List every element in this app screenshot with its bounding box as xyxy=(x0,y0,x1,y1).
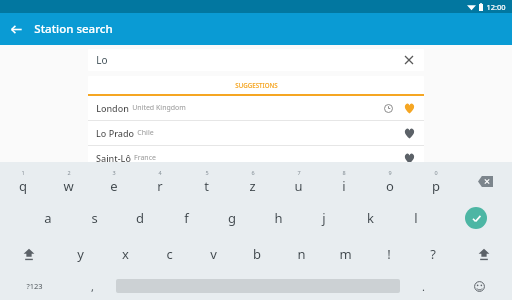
button[interactable]: v xyxy=(191,236,235,272)
button[interactable]: n xyxy=(279,236,323,272)
staticText: r xyxy=(157,177,163,195)
button[interactable]: x xyxy=(103,236,147,272)
staticText: Station search xyxy=(34,21,113,37)
staticText: i xyxy=(342,177,346,195)
button[interactable]: f xyxy=(163,200,209,236)
button[interactable]: ! xyxy=(367,236,411,272)
staticText: Lo Prado xyxy=(96,127,134,139)
staticText: 2 xyxy=(67,169,71,176)
button[interactable]: Favorite xyxy=(398,147,420,169)
button[interactable]: Shift xyxy=(455,236,512,272)
staticText: s xyxy=(91,209,98,227)
button[interactable]: l xyxy=(393,200,439,236)
staticText: SUGGESTIONS xyxy=(235,81,278,89)
button[interactable]: c xyxy=(147,236,191,272)
button[interactable]: 4 xyxy=(137,162,183,200)
staticText: ? xyxy=(430,245,436,263)
button[interactable]: 6 xyxy=(229,162,275,200)
staticText: j xyxy=(322,209,326,227)
staticText: l xyxy=(414,209,418,227)
staticText: 0 xyxy=(434,169,438,176)
staticText: k xyxy=(367,209,374,227)
button[interactable]: SUGGESTIONS xyxy=(88,76,424,96)
staticText: Saint-Lô xyxy=(96,152,131,164)
staticText: v xyxy=(210,245,217,263)
button[interactable]: , xyxy=(69,272,116,300)
button[interactable]: k xyxy=(347,200,393,236)
staticText: b xyxy=(253,245,261,263)
staticText: 9 xyxy=(388,169,392,176)
staticText: c xyxy=(166,245,173,263)
staticText: m xyxy=(339,245,352,263)
button[interactable]: 0 xyxy=(413,162,459,200)
button[interactable]: j xyxy=(301,200,347,236)
staticText: 12:00 xyxy=(486,2,506,12)
button[interactable]: 5 xyxy=(183,162,229,200)
staticText: q xyxy=(19,177,27,195)
staticText: o xyxy=(386,177,394,195)
staticText: p xyxy=(432,177,440,195)
button[interactable]: Clear xyxy=(398,49,420,71)
staticText: 6 xyxy=(251,169,255,176)
button[interactable]: Back xyxy=(0,13,32,45)
button[interactable]: a xyxy=(25,200,71,236)
button[interactable]: London xyxy=(88,96,424,120)
staticText: Lo xyxy=(96,53,108,67)
staticText: n xyxy=(297,245,306,263)
staticText: United Kingdom xyxy=(132,103,186,113)
button[interactable]: 8 xyxy=(321,162,367,200)
button[interactable]: Recent xyxy=(378,98,398,118)
button[interactable]: Emoji xyxy=(447,272,512,300)
staticText: London xyxy=(96,102,129,114)
staticText: x xyxy=(122,245,129,263)
button[interactable]: g xyxy=(209,200,255,236)
button[interactable]: Favorite xyxy=(398,97,420,119)
staticText: ?123 xyxy=(26,281,43,291)
staticText: . xyxy=(422,279,425,294)
staticText: d xyxy=(136,209,144,227)
button[interactable]: 9 xyxy=(367,162,413,200)
staticText: a xyxy=(44,209,52,227)
button[interactable]: ?123 xyxy=(0,272,69,300)
button[interactable]: m xyxy=(323,236,367,272)
button[interactable]: Backspace xyxy=(459,162,512,200)
staticText: 3 xyxy=(112,169,116,176)
staticText: ! xyxy=(387,245,391,263)
staticText: France xyxy=(134,153,156,163)
button[interactable]: 3 xyxy=(91,162,137,200)
button[interactable]: s xyxy=(71,200,117,236)
button[interactable]: 1 xyxy=(0,162,45,200)
button[interactable]: . xyxy=(400,272,447,300)
staticText: h xyxy=(274,209,283,227)
button[interactable]: Lo Prado xyxy=(88,121,424,145)
staticText: 5 xyxy=(205,169,209,176)
staticText: u xyxy=(294,177,303,195)
staticText: g xyxy=(228,209,236,227)
button[interactable]: Saint-Lô xyxy=(88,146,424,170)
staticText: Chile xyxy=(137,128,154,138)
staticText: t xyxy=(204,177,209,195)
staticText: z xyxy=(249,177,256,195)
button[interactable]: Enter xyxy=(439,200,512,236)
button[interactable]: 7 xyxy=(275,162,321,200)
staticText: 7 xyxy=(297,169,301,176)
button[interactable]: b xyxy=(235,236,279,272)
staticText: 4 xyxy=(158,169,162,176)
staticText: 1 xyxy=(21,169,25,176)
button[interactable]: Lo xyxy=(88,49,424,71)
staticText: f xyxy=(184,209,189,227)
button[interactable]: 2 xyxy=(45,162,91,200)
button[interactable]: Shift xyxy=(0,236,58,272)
button[interactable]: Favorite xyxy=(398,122,420,144)
staticText: 8 xyxy=(342,169,346,176)
staticText: , xyxy=(91,279,94,294)
button[interactable]: y xyxy=(58,236,103,272)
button[interactable]: d xyxy=(117,200,163,236)
button[interactable]: h xyxy=(255,200,301,236)
staticText: e xyxy=(110,177,118,195)
button[interactable]: ? xyxy=(411,236,455,272)
staticText: w xyxy=(63,177,74,195)
staticText: y xyxy=(77,245,84,263)
